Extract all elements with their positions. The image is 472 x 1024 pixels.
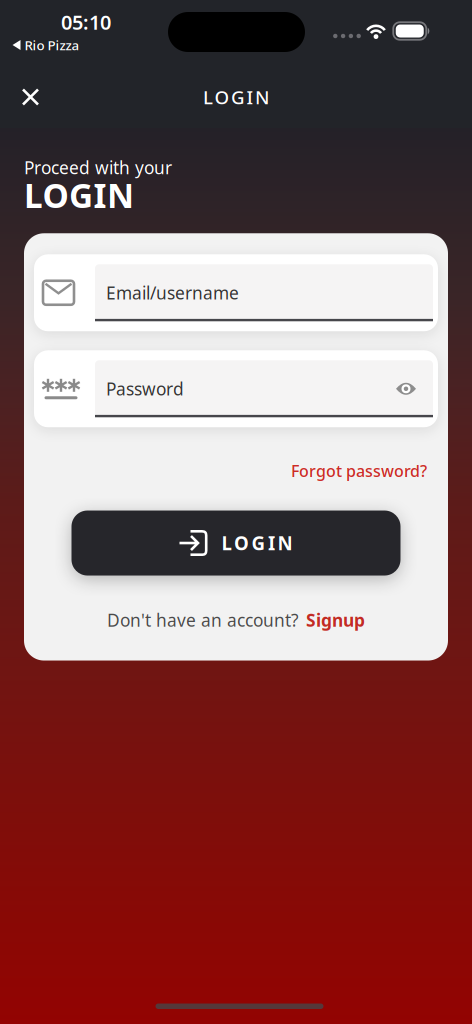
staticText: Signup (306, 608, 365, 631)
staticText: Forgot password? (291, 460, 427, 481)
staticText: Password (106, 377, 184, 400)
staticText: Proceed with your (24, 156, 172, 179)
staticText: LOGIN (221, 531, 292, 555)
button[interactable]: Signup (306, 608, 365, 631)
staticText: Email/username (106, 281, 239, 304)
button[interactable] (0, 81, 38, 112)
staticText: 05:10 (61, 9, 111, 35)
button[interactable]: Email/username (34, 254, 438, 331)
button[interactable]: Password (34, 350, 438, 427)
button[interactable]: LOGIN (71, 510, 400, 575)
staticText: Don't have an account? (107, 608, 299, 631)
staticText: LOGIN (203, 85, 269, 109)
button[interactable]: Forgot password? (291, 460, 427, 481)
staticText: Rio Pizza (24, 36, 79, 54)
staticText: LOGIN (24, 173, 134, 217)
